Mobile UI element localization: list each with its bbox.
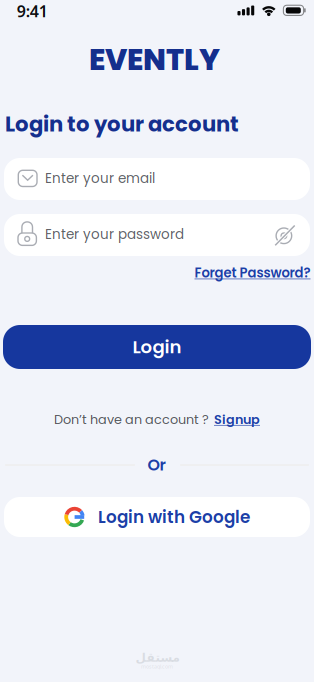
button[interactable]: Forget Password? <box>194 264 310 282</box>
staticText: EVENTLY <box>89 38 220 80</box>
staticText: 9:41 <box>17 0 48 22</box>
button[interactable]: Enter your password <box>4 214 310 256</box>
staticText: mostaql.com <box>141 663 173 670</box>
staticText: Don’t have an account ? <box>54 410 209 428</box>
staticText: Enter your password <box>45 225 184 244</box>
staticText: Or <box>147 454 165 476</box>
staticText: Enter your email <box>45 169 155 188</box>
staticText: Login <box>132 334 181 360</box>
staticText: Signup <box>214 410 260 428</box>
button[interactable]: Enter your email <box>4 158 310 200</box>
button[interactable]: Login <box>3 325 311 369</box>
staticText: Forget Password? <box>194 264 310 282</box>
button[interactable]: Login with Google <box>4 497 310 537</box>
staticText: Login to your account <box>5 109 239 139</box>
button[interactable]: Signup <box>214 410 260 428</box>
staticText: مستقل <box>135 651 179 664</box>
staticText: Login with Google <box>98 505 250 529</box>
